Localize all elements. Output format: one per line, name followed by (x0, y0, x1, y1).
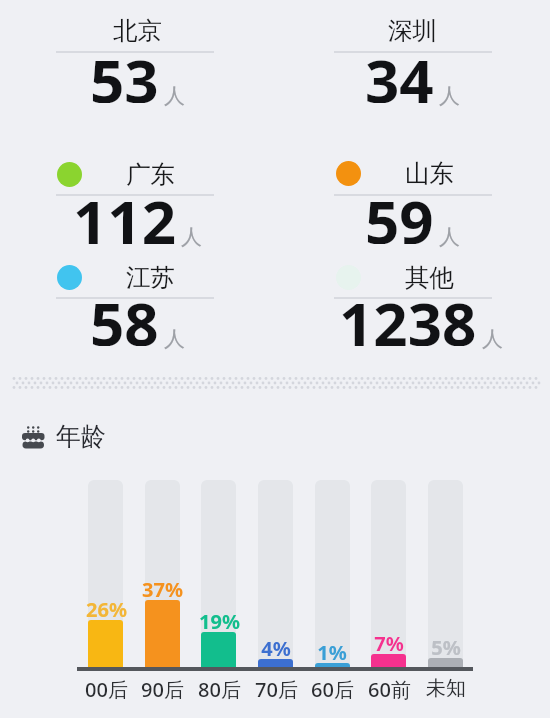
button[interactable]: 59 (275, 183, 550, 247)
staticText: 深圳 (388, 15, 437, 46)
staticText: 60后 (311, 676, 354, 700)
staticText: 人 (482, 326, 503, 352)
staticText: 北京 (113, 15, 162, 46)
staticText: 70后 (255, 676, 298, 700)
staticText: 60前 (368, 676, 411, 700)
staticText: 37% (142, 576, 183, 598)
staticText: 江苏 (126, 262, 175, 293)
staticText: 广东 (126, 159, 175, 190)
button[interactable] (88, 620, 123, 667)
button[interactable]: 53 (0, 42, 275, 106)
staticText: 53 (90, 39, 159, 103)
staticText: 未知 (426, 676, 466, 700)
staticText: 19% (199, 608, 240, 630)
button[interactable]: 112 (0, 183, 275, 247)
staticText: 山东 (405, 158, 454, 189)
staticText: 5% (431, 634, 461, 656)
button[interactable] (258, 659, 293, 667)
staticText: 4% (261, 635, 291, 657)
button[interactable]: 34 (275, 42, 550, 106)
staticText: 人 (439, 224, 460, 250)
button[interactable] (201, 632, 236, 667)
staticText: 26% (86, 596, 127, 618)
staticText: 1238 (339, 282, 477, 346)
staticText: 人 (181, 224, 202, 250)
button[interactable] (145, 600, 180, 667)
staticText: 7% (374, 630, 404, 652)
staticText: 00后 (85, 676, 128, 700)
staticText: 人 (439, 83, 460, 109)
staticText: 其他 (405, 262, 454, 293)
button[interactable] (428, 658, 463, 667)
staticText: 80后 (198, 676, 241, 700)
button[interactable]: 1238 (283, 285, 550, 349)
button[interactable] (371, 654, 406, 667)
staticText: 人 (164, 83, 185, 109)
staticText: 59 (365, 180, 434, 244)
staticText: 1% (317, 639, 347, 661)
button[interactable] (315, 663, 350, 667)
staticText: 112 (73, 180, 176, 244)
staticText: 34 (365, 39, 434, 103)
staticText: 58 (90, 282, 159, 346)
staticText: 人 (164, 326, 185, 352)
button[interactable]: 年龄 (56, 421, 156, 449)
staticText: 年龄 (56, 421, 106, 449)
button[interactable]: 58 (0, 285, 275, 349)
staticText: 90后 (141, 676, 184, 700)
